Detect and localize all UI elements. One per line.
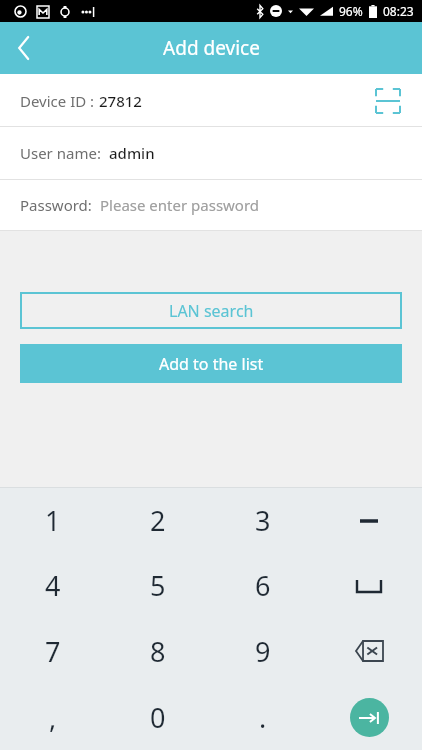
- button[interactable]: 0: [105, 684, 210, 750]
- button[interactable]: Backspace: [316, 618, 422, 684]
- button[interactable]: 5: [105, 553, 210, 618]
- staticText: 3: [255, 502, 271, 539]
- staticText: 0: [150, 699, 166, 736]
- button[interactable]: Back: [0, 24, 48, 72]
- button[interactable]: 2: [105, 488, 210, 553]
- staticText: Please enter password: [100, 195, 260, 215]
- button[interactable]: Minus: [316, 488, 422, 553]
- staticText: 8: [150, 633, 166, 670]
- button[interactable]: LAN search: [20, 292, 402, 329]
- button[interactable]: .: [210, 684, 316, 750]
- button[interactable]: Add to the list: [20, 344, 402, 383]
- button[interactable]: Space: [316, 553, 422, 618]
- staticText: LAN search: [169, 300, 254, 322]
- staticText: Add device: [163, 35, 260, 61]
- staticText: 7: [45, 633, 61, 670]
- staticText: Device ID :: [20, 91, 99, 111]
- staticText: 5: [150, 567, 166, 604]
- staticText: 27812: [99, 91, 142, 111]
- staticText: admin: [109, 143, 155, 163]
- staticText: 6: [255, 567, 271, 604]
- button[interactable]: 6: [210, 553, 316, 618]
- staticText: Add to the list: [159, 353, 264, 375]
- button[interactable]: 9: [210, 618, 316, 684]
- staticText: 2: [150, 502, 166, 539]
- button[interactable]: 4: [0, 553, 105, 618]
- button[interactable]: Device ID :: [0, 76, 422, 126]
- button[interactable]: Password:: [0, 180, 422, 230]
- button[interactable]: ,: [0, 684, 105, 750]
- button[interactable]: 8: [105, 618, 210, 684]
- staticText: .: [259, 699, 267, 736]
- button[interactable]: 7: [0, 618, 105, 684]
- staticText: Password:: [20, 195, 100, 215]
- staticText: ,: [49, 699, 57, 736]
- button[interactable]: 1: [0, 488, 105, 553]
- staticText: 1: [45, 502, 61, 539]
- button[interactable]: 3: [210, 488, 316, 553]
- staticText: 4: [45, 567, 61, 604]
- button[interactable]: User name:: [0, 127, 422, 179]
- staticText: User name:: [20, 143, 109, 163]
- button[interactable]: Scan QR code: [368, 81, 408, 121]
- button[interactable]: Enter: [316, 684, 422, 750]
- staticText: 96%: [339, 3, 363, 19]
- staticText: 9: [255, 633, 271, 670]
- staticText: 08:23: [383, 3, 414, 19]
